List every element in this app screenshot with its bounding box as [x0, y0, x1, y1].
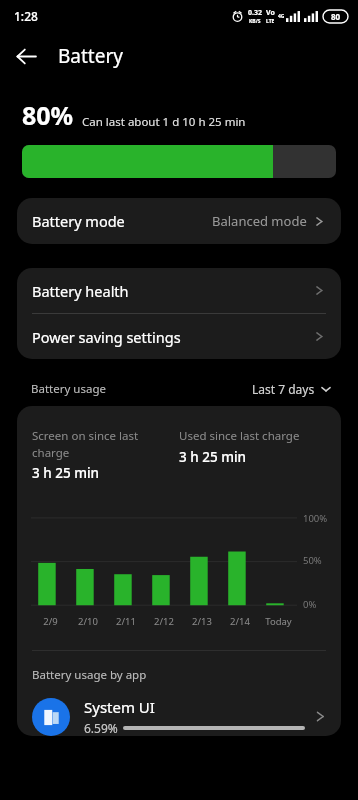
- staticText: 80%: [22, 98, 74, 132]
- staticText: 3 h 25 min: [32, 464, 100, 482]
- staticText: 0%: [303, 598, 317, 611]
- staticText: Balanced mode: [212, 212, 307, 230]
- staticText: 4G: [278, 13, 285, 20]
- staticText: Power saving settings: [32, 327, 181, 347]
- staticText: 2/14: [230, 615, 250, 628]
- button[interactable]: Battery health: [17, 268, 341, 313]
- staticText: Battery usage: [31, 381, 106, 397]
- button[interactable]: Battery mode: [17, 198, 341, 244]
- staticText: Last 7 days: [252, 381, 315, 397]
- button[interactable]: System UI: [17, 697, 341, 736]
- staticText: Used since last charge: [179, 428, 300, 444]
- staticText: System UI: [84, 697, 155, 717]
- staticText: Battery: [58, 43, 123, 69]
- staticText: 6.59%: [84, 720, 118, 736]
- staticText: 2/12: [154, 615, 174, 628]
- staticText: Battery usage by app: [32, 667, 147, 683]
- staticText: Can last about 1 d 10 h 25 min: [82, 114, 246, 130]
- staticText: 2/11: [116, 615, 136, 628]
- staticText: 2/10: [78, 615, 98, 628]
- staticText: 1:28: [14, 8, 38, 24]
- staticText: 80: [331, 11, 341, 22]
- staticText: 3 h 25 min: [179, 448, 247, 466]
- staticText: 2/13: [192, 615, 212, 628]
- staticText: Battery health: [32, 281, 129, 301]
- staticText: 50%: [303, 554, 322, 567]
- staticText: LTE: [266, 18, 275, 25]
- staticText: Vo: [266, 8, 275, 18]
- staticText: KB/S: [249, 18, 261, 25]
- staticText: Battery mode: [32, 211, 125, 231]
- staticText: Today: [265, 615, 292, 628]
- staticText: Screen on since last charge: [32, 428, 167, 460]
- staticText: 2/9: [43, 615, 58, 628]
- staticText: 100%: [303, 512, 328, 525]
- staticText: 0.32: [248, 8, 262, 18]
- button[interactable]: Back: [8, 38, 44, 74]
- button[interactable]: Power saving settings: [17, 314, 341, 359]
- button[interactable]: Last 7 days: [252, 381, 332, 397]
